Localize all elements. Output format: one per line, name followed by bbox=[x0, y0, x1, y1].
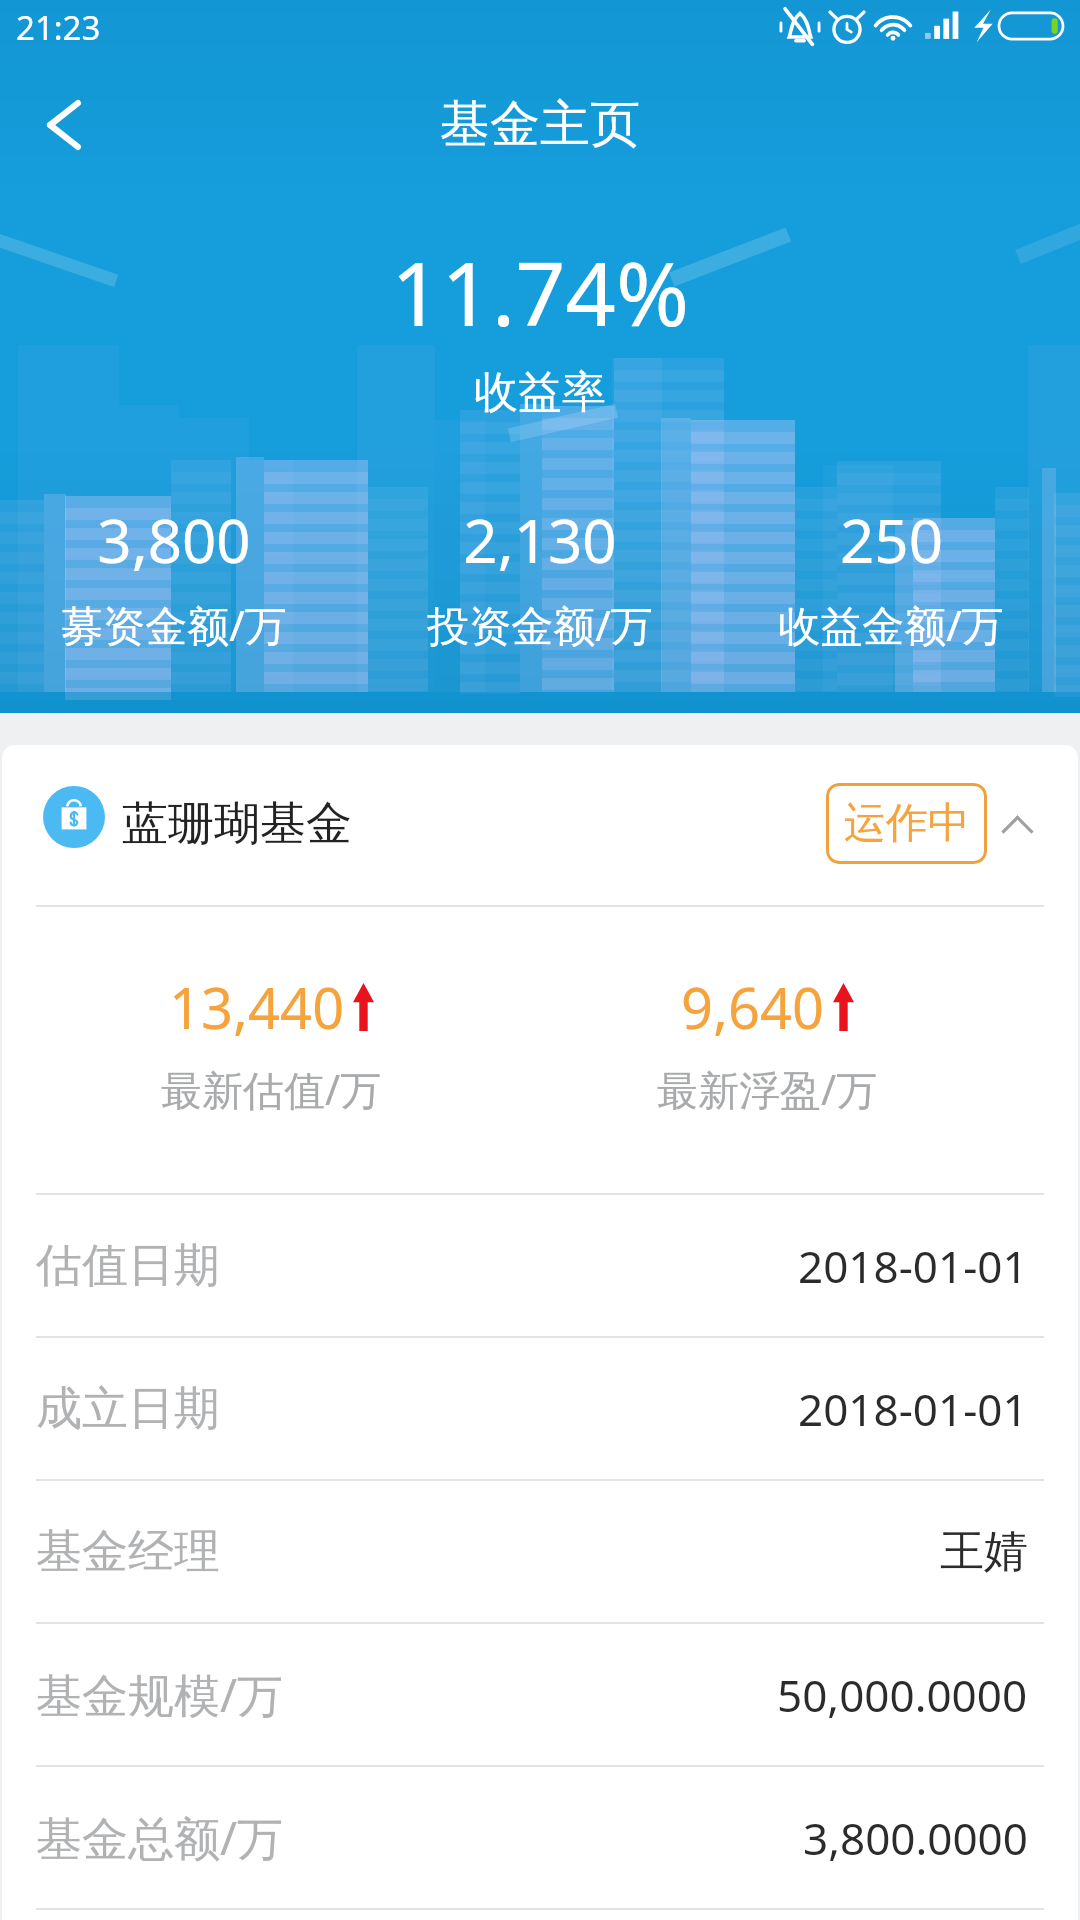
staticText: 成立日期 bbox=[36, 1380, 220, 1438]
button[interactable]: 蓝珊瑚基金 bbox=[2, 745, 1078, 905]
button[interactable]: 成立日期 bbox=[2, 1338, 1078, 1479]
button[interactable]: 250 bbox=[711, 499, 1071, 653]
staticText: 基金总额/万 bbox=[36, 1806, 284, 1869]
staticText: 运作中 bbox=[844, 797, 970, 850]
staticText: 基金经理 bbox=[36, 1523, 220, 1581]
button[interactable]: 基金规模/万 bbox=[2, 1624, 1078, 1765]
staticText: 3,800 bbox=[97, 499, 251, 581]
button[interactable]: Back bbox=[19, 80, 109, 170]
staticText: 基金主页 bbox=[440, 93, 640, 156]
staticText: 13,440 bbox=[169, 969, 345, 1045]
staticText: 基金规模/万 bbox=[36, 1663, 284, 1726]
staticText: 收益率 bbox=[0, 365, 1080, 420]
staticText: 2018-01-01 bbox=[798, 1236, 1028, 1296]
staticText: 9,640 bbox=[681, 969, 825, 1045]
staticText: 250 bbox=[840, 499, 943, 581]
staticText: 最新估值/万 bbox=[161, 1061, 382, 1117]
staticText: 2018-01-01 bbox=[798, 1379, 1028, 1439]
button[interactable]: 3,800 bbox=[0, 499, 354, 653]
button[interactable]: 13,440 bbox=[2, 900, 540, 1186]
staticText: 估值日期 bbox=[36, 1237, 220, 1295]
staticText: 11.74% bbox=[0, 232, 1080, 352]
button[interactable]: 基金总额/万 bbox=[2, 1767, 1078, 1908]
button[interactable]: 9,640 bbox=[498, 900, 1036, 1186]
staticText: 50,000.0000 bbox=[777, 1665, 1028, 1725]
staticText: 王婧 bbox=[940, 1524, 1028, 1579]
staticText: 最新浮盈/万 bbox=[657, 1061, 878, 1117]
staticText: 蓝珊瑚基金 bbox=[122, 795, 352, 853]
button[interactable]: Collapse bbox=[992, 799, 1042, 849]
button[interactable]: 基金经理 bbox=[2, 1481, 1078, 1622]
button[interactable]: 2,130 bbox=[360, 499, 720, 653]
button[interactable]: 运作中 bbox=[826, 783, 987, 864]
staticText: 收益金额/万 bbox=[778, 596, 1004, 653]
staticText: 募资金额/万 bbox=[61, 596, 287, 653]
staticText: 投资金额/万 bbox=[427, 596, 653, 653]
button[interactable]: 估值日期 bbox=[2, 1195, 1078, 1336]
staticText: 3,800.0000 bbox=[803, 1808, 1028, 1868]
staticText: 2,130 bbox=[463, 499, 617, 581]
staticText: 21:23 bbox=[16, 5, 101, 50]
